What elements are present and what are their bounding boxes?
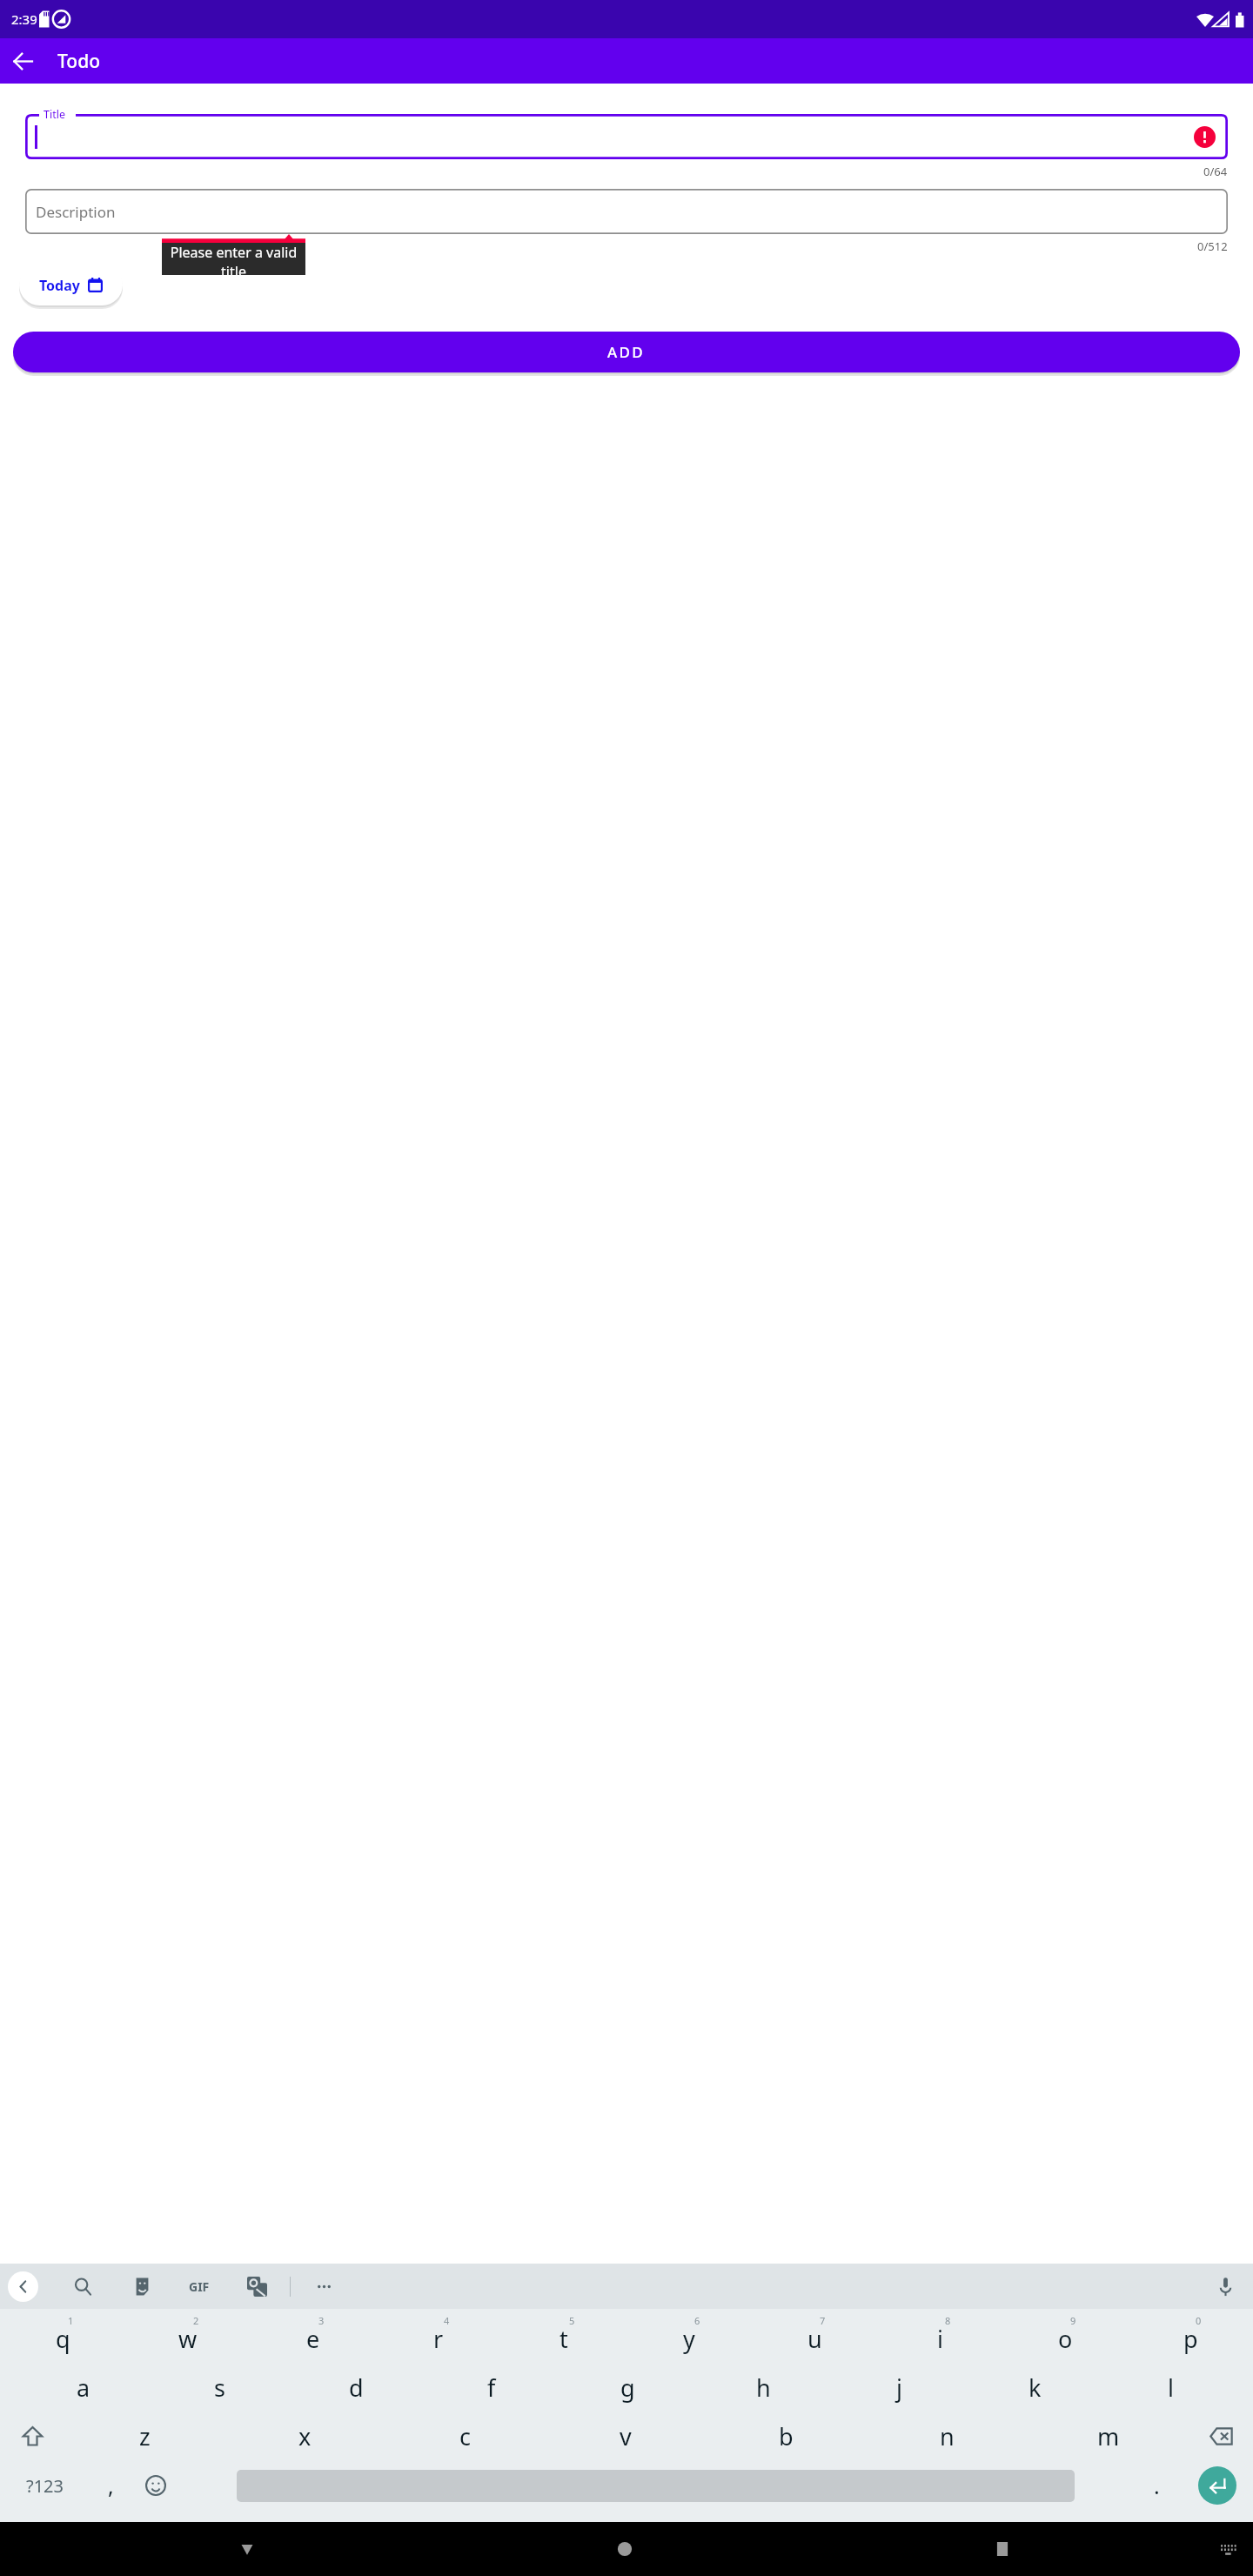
button[interactable]: k <box>967 2363 1102 2412</box>
staticText: q <box>56 2323 70 2355</box>
button[interactable]: Enter <box>1198 2466 1236 2505</box>
staticText: Please enter a valid title <box>162 243 305 275</box>
staticText: w <box>178 2323 198 2355</box>
button[interactable]: ADD <box>13 332 1240 372</box>
button[interactable]: Switch keyboard <box>1207 2528 1249 2570</box>
staticText: 0 <box>1196 2314 1202 2327</box>
button[interactable]: b <box>706 2412 867 2460</box>
staticText: ?123 <box>26 2474 64 2498</box>
staticText: 7 <box>820 2314 826 2327</box>
staticText: 8 <box>945 2314 951 2327</box>
button[interactable]: g <box>559 2363 695 2412</box>
button[interactable]: 4 <box>376 2309 501 2363</box>
staticText: 0/64 <box>1203 164 1228 179</box>
staticText: e <box>306 2323 320 2355</box>
staticText: 5 <box>569 2314 575 2327</box>
button[interactable]: , <box>89 2460 132 2511</box>
staticText: v <box>620 2420 632 2452</box>
button[interactable]: n <box>867 2412 1028 2460</box>
button[interactable]: ?123 <box>0 2460 89 2511</box>
button[interactable]: 0 <box>1128 2309 1253 2363</box>
button[interactable]: Today <box>19 265 123 305</box>
staticText: Title <box>44 107 65 122</box>
button[interactable]: a <box>15 2363 151 2412</box>
button[interactable]: Shift <box>0 2412 64 2460</box>
button[interactable]: Voice input <box>1210 2271 1240 2301</box>
button[interactable]: Search <box>68 2271 97 2301</box>
other: Error: please enter a valid title <box>1194 126 1216 148</box>
button[interactable]: Backspace <box>1189 2412 1253 2460</box>
staticText: 2:39 <box>11 10 37 28</box>
button[interactable]: s <box>151 2363 288 2412</box>
button[interactable]: Recent apps <box>980 2526 1025 2572</box>
staticText: Todo <box>57 49 101 74</box>
staticText: 0/512 <box>1197 238 1228 254</box>
staticText: 4 <box>444 2314 450 2327</box>
button[interactable]: Title <box>25 114 1228 159</box>
staticText: m <box>1097 2420 1120 2452</box>
staticText: 6 <box>694 2314 700 2327</box>
staticText: y <box>683 2323 695 2355</box>
staticText: j <box>896 2371 902 2404</box>
button[interactable]: 3 <box>251 2309 376 2363</box>
button[interactable]: 8 <box>877 2309 1002 2363</box>
button[interactable]: m <box>1028 2412 1189 2460</box>
button[interactable]: Translate <box>242 2271 271 2301</box>
staticText: . <box>1154 2471 1160 2500</box>
staticText: z <box>139 2420 151 2452</box>
button[interactable]: Emoji <box>132 2460 179 2511</box>
button[interactable]: Home <box>602 2526 647 2572</box>
button[interactable]: v <box>545 2412 706 2460</box>
staticText: b <box>779 2420 794 2452</box>
staticText: g <box>620 2371 635 2404</box>
staticText: l <box>1168 2371 1174 2404</box>
button[interactable]: 9 <box>1002 2309 1128 2363</box>
button[interactable]: GIF <box>184 2271 214 2301</box>
button[interactable]: . <box>1131 2460 1182 2511</box>
staticText: 3 <box>318 2314 325 2327</box>
staticText: h <box>756 2371 771 2404</box>
button[interactable]: z <box>64 2412 224 2460</box>
staticText: n <box>940 2420 955 2452</box>
staticText: r <box>433 2323 444 2355</box>
staticText: o <box>1058 2323 1073 2355</box>
staticText: c <box>459 2420 471 2452</box>
button[interactable]: More options <box>309 2271 338 2301</box>
staticText: Today <box>39 276 80 295</box>
staticText: , <box>108 2471 114 2500</box>
staticText: u <box>807 2323 822 2355</box>
button[interactable]: 6 <box>626 2309 752 2363</box>
staticText: p <box>1183 2323 1198 2355</box>
staticText: x <box>298 2420 312 2452</box>
staticText: GIF <box>189 2278 210 2295</box>
staticText: i <box>937 2323 943 2355</box>
button[interactable]: Back <box>8 2271 38 2302</box>
button[interactable]: h <box>695 2363 831 2412</box>
staticText: 9 <box>1070 2314 1076 2327</box>
staticText: t <box>559 2323 568 2355</box>
button[interactable]: x <box>224 2412 385 2460</box>
button[interactable]: Description <box>25 189 1228 234</box>
button[interactable]: j <box>831 2363 967 2412</box>
button[interactable]: Stickers <box>127 2271 157 2301</box>
staticText: a <box>77 2371 90 2404</box>
button[interactable]: 2 <box>125 2309 251 2363</box>
button[interactable]: l <box>1102 2363 1238 2412</box>
staticText: ADD <box>607 342 646 362</box>
staticText: 2 <box>193 2314 199 2327</box>
button[interactable]: c <box>385 2412 545 2460</box>
staticText: Description <box>36 202 116 222</box>
staticText: f <box>487 2371 496 2404</box>
button[interactable]: 5 <box>501 2309 626 2363</box>
button[interactable]: f <box>424 2363 559 2412</box>
button[interactable]: d <box>288 2363 424 2412</box>
button[interactable]: Navigate up <box>0 38 45 84</box>
button[interactable]: 7 <box>752 2309 877 2363</box>
staticText: k <box>1029 2371 1042 2404</box>
staticText: 1 <box>68 2314 74 2327</box>
staticText: s <box>214 2371 225 2404</box>
button[interactable]: Back <box>224 2526 270 2572</box>
staticText: d <box>349 2371 364 2404</box>
button[interactable]: 1 <box>0 2309 125 2363</box>
